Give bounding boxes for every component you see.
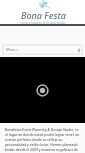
button[interactable]: Play video bbox=[0, 57, 85, 123]
button[interactable]: Bona Festa home bbox=[0, 0, 85, 24]
button[interactable]: Open menu bbox=[3, 45, 82, 54]
staticText: event planning & design studio bbox=[20, 21, 66, 24]
staticText: Bonafesta Event Planning & Design Studio… bbox=[5, 127, 80, 153]
staticText: Bona Festa bbox=[21, 9, 66, 21]
staticText: Menu... bbox=[6, 47, 21, 52]
